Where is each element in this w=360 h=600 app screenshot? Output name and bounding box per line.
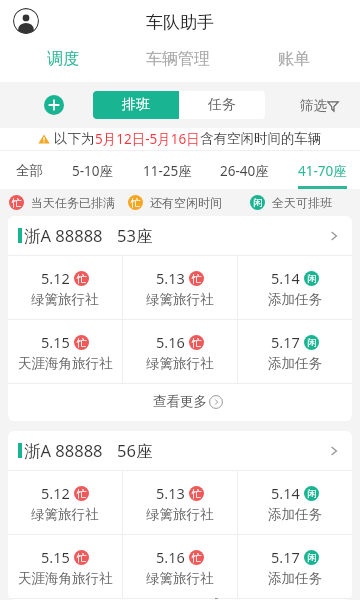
staticText: 添加任务: [268, 570, 322, 587]
staticText: 绿篱旅行社: [31, 506, 99, 523]
staticText: 忙: [77, 273, 87, 285]
staticText: 忙: [77, 337, 87, 349]
staticText: 5.16: [156, 332, 185, 352]
staticText: 5.14: [271, 268, 300, 288]
staticText: 调度: [47, 49, 79, 69]
staticText: 天涯海角旅行社: [18, 570, 113, 587]
button[interactable]: 5.16: [123, 535, 237, 598]
staticText: 闲: [307, 337, 317, 349]
staticText: 5.14: [271, 483, 300, 503]
staticText: 天涯海角旅行社: [18, 355, 113, 372]
staticText: 绿篱旅行社: [146, 291, 214, 308]
button[interactable]: 5.15: [8, 320, 122, 383]
button[interactable]: 5.14: [238, 256, 352, 319]
staticText: 闲: [307, 552, 317, 564]
staticText: 忙: [192, 337, 202, 349]
staticText: 忙: [77, 552, 87, 564]
staticText: 查看更多: [153, 393, 207, 410]
button[interactable]: 5.13: [123, 256, 237, 319]
staticText: 绿篱旅行社: [146, 570, 214, 587]
button[interactable]: 筛选: [300, 97, 360, 114]
staticText: 浙A 88888: [24, 439, 103, 462]
button[interactable]: 5.16: [123, 320, 237, 383]
staticText: 5.15: [41, 547, 70, 567]
staticText: 车辆管理: [146, 49, 210, 69]
staticText: 忙: [192, 273, 202, 285]
staticText: 当天任务已排满: [31, 195, 115, 210]
button[interactable]: 调度: [5, 44, 120, 82]
staticText: 忙: [77, 488, 87, 500]
button[interactable]: 5.17: [238, 320, 352, 383]
staticText: 绿篱旅行社: [146, 355, 214, 372]
staticText: 5.17: [271, 547, 300, 567]
staticText: 5-10座: [72, 162, 114, 180]
staticText: 闲: [307, 488, 317, 500]
button[interactable]: 11-25座: [143, 151, 192, 189]
staticText: 5.13: [156, 268, 185, 288]
staticText: 5月12日-5月16日: [95, 130, 200, 148]
staticText: 还有空闲时间: [150, 195, 222, 210]
staticText: 排班: [122, 96, 150, 114]
staticText: 5.15: [41, 332, 70, 352]
staticText: 56座: [117, 439, 153, 462]
staticText: 添加任务: [268, 355, 322, 372]
staticText: 忙: [192, 552, 202, 564]
button[interactable]: 全部: [16, 151, 43, 189]
button[interactable]: 5.15: [8, 535, 122, 598]
staticText: 筛选: [300, 97, 327, 114]
staticText: 全天可排班: [272, 195, 332, 210]
staticText: 41-70座: [298, 162, 347, 180]
button[interactable]: 26-40座: [220, 151, 269, 189]
button[interactable]: 排班: [93, 91, 179, 119]
staticText: 含有空闲时间的车辆: [200, 130, 322, 147]
button[interactable]: 车辆管理: [120, 44, 236, 82]
staticText: 绿篱旅行社: [31, 291, 99, 308]
button[interactable]: 5.14: [238, 471, 352, 534]
button[interactable]: 浙A 88888: [8, 431, 352, 470]
button[interactable]: 5.12: [8, 471, 122, 534]
staticText: 5.12: [41, 268, 70, 288]
button[interactable]: 5.13: [123, 471, 237, 534]
staticText: 11-25座: [143, 162, 192, 180]
staticText: 闲: [307, 273, 317, 285]
button[interactable]: Profile: [13, 8, 39, 34]
staticText: 绿篱旅行社: [146, 506, 214, 523]
staticText: 以下为: [54, 130, 95, 147]
staticText: 26-40座: [220, 162, 269, 180]
staticText: 任务: [208, 96, 236, 114]
staticText: 5.12: [41, 483, 70, 503]
button[interactable]: Add: [44, 95, 64, 115]
staticText: 53座: [117, 224, 153, 247]
staticText: 忙: [192, 488, 202, 500]
button[interactable]: 浙A 88888: [8, 216, 352, 255]
staticText: 浙A 88888: [24, 224, 103, 247]
button[interactable]: 查看更多: [8, 384, 352, 421]
staticText: 添加任务: [268, 506, 322, 523]
staticText: 忙: [131, 197, 141, 209]
staticText: 闲: [253, 197, 263, 209]
button[interactable]: 5.17: [238, 535, 352, 598]
staticText: 5.13: [156, 483, 185, 503]
staticText: 账单: [278, 49, 310, 69]
staticText: 5.16: [156, 547, 185, 567]
staticText: 车队助手: [146, 12, 214, 33]
button[interactable]: 41-70座: [298, 151, 347, 189]
staticText: 添加任务: [268, 291, 322, 308]
staticText: 全部: [16, 162, 43, 179]
staticText: 5.17: [271, 332, 300, 352]
button[interactable]: 任务: [179, 91, 265, 119]
button[interactable]: 5.12: [8, 256, 122, 319]
staticText: 忙: [12, 197, 22, 209]
button[interactable]: 5-10座: [72, 151, 114, 189]
button[interactable]: 账单: [236, 44, 352, 82]
